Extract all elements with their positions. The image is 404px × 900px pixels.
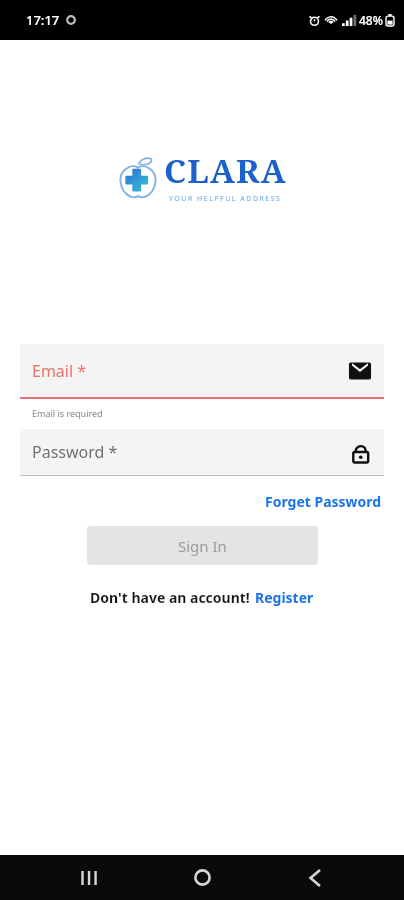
staticText: Email is required <box>32 407 103 419</box>
button[interactable]: Home <box>178 855 226 900</box>
staticText: Forget Password <box>265 492 382 511</box>
button[interactable]: Back <box>291 855 339 900</box>
staticText: Register <box>255 588 314 607</box>
staticText: Sign In <box>178 536 227 556</box>
staticText: Password * <box>32 441 118 463</box>
staticText: YOUR HELPFUL ADDRESS <box>169 194 282 204</box>
other: Show password <box>348 440 372 464</box>
staticText: 17:17 <box>26 11 60 29</box>
other: Email <box>348 359 372 383</box>
button[interactable]: Forget Password <box>263 490 384 513</box>
button[interactable]: Email * <box>20 344 384 399</box>
staticText: Don't have an account! <box>90 588 250 607</box>
button[interactable]: Password * <box>20 429 384 476</box>
staticText: Email * <box>32 360 87 382</box>
staticText: 48% <box>359 12 383 28</box>
button[interactable]: Sign In <box>87 526 318 565</box>
button[interactable]: Recent apps <box>65 855 113 900</box>
button[interactable]: Register <box>255 588 314 607</box>
staticText: CLARA <box>164 148 287 193</box>
